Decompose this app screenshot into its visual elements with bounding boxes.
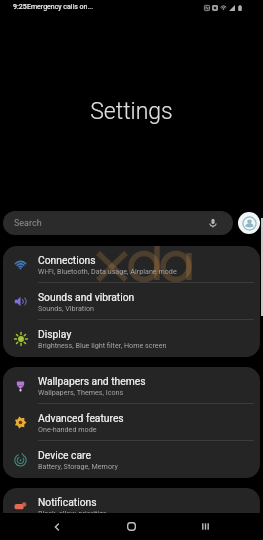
button[interactable]: Notifications	[3, 488, 260, 525]
button[interactable]: Wallpapers and themes	[3, 367, 260, 404]
staticText: Settings	[90, 98, 173, 125]
button[interactable]: Account	[238, 212, 260, 234]
button[interactable]: Display	[3, 320, 260, 357]
button[interactable]: Home	[94, 513, 168, 540]
staticText: Connections	[38, 254, 96, 266]
staticText: Sounds, Vibration	[38, 304, 94, 312]
staticText: Wi-Fi, Bluetooth, Data usage, Airplane m…	[38, 267, 177, 275]
staticText: Wallpapers and themes	[38, 375, 146, 387]
button[interactable]: Sounds and vibration	[3, 283, 260, 320]
button[interactable]: Advanced features	[3, 404, 260, 441]
staticText: Brightness, Blue light filter, Home scre…	[38, 341, 167, 349]
staticText: Device care	[38, 449, 91, 461]
staticText: Emergency calls on...	[27, 3, 93, 11]
staticText: One-handed mode	[38, 425, 97, 433]
button[interactable]: Back	[20, 513, 94, 540]
button[interactable]: Device care	[3, 441, 260, 478]
button[interactable]: Recents	[168, 513, 242, 540]
staticText: 9:25	[13, 3, 27, 11]
button[interactable]: Search	[3, 211, 233, 235]
staticText: Advanced features	[38, 412, 124, 424]
other: Voice search	[207, 217, 219, 229]
staticText: Block, allow, prioritize	[38, 509, 107, 517]
staticText: Sounds and vibration	[38, 291, 135, 303]
button[interactable]: Connections	[3, 246, 260, 283]
staticText: Wallpapers, Themes, Icons	[38, 388, 124, 396]
staticText: Notifications	[38, 496, 97, 508]
staticText: Battery, Storage, Memory	[38, 462, 118, 470]
staticText: Search	[14, 218, 42, 229]
staticText: Display	[38, 328, 72, 340]
